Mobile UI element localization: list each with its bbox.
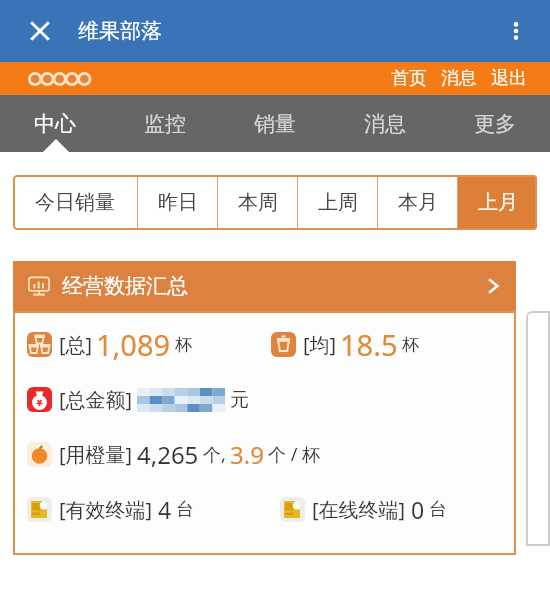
staticText: 杯 xyxy=(175,334,192,355)
staticText: [有效终端] xyxy=(59,496,153,523)
staticText: 台 xyxy=(429,498,447,521)
button[interactable]: More options xyxy=(494,9,538,53)
staticText: 上月 xyxy=(478,190,518,215)
button[interactable]: 更多 xyxy=(440,95,550,152)
button[interactable]: 今日销量 xyxy=(13,175,137,230)
staticText: 本周 xyxy=(238,190,278,215)
button[interactable]: 首页 xyxy=(384,67,434,90)
staticText: 个, xyxy=(203,442,226,467)
staticText: 今日销量 xyxy=(35,190,115,215)
button[interactable]: 昨日 xyxy=(138,175,217,230)
button[interactable]: 退出 xyxy=(484,67,534,90)
staticText: 杯 xyxy=(402,334,419,355)
staticText: 首页 xyxy=(391,67,427,90)
staticText: 个 / 杯 xyxy=(268,442,321,467)
staticText: 0 xyxy=(411,494,425,525)
staticText: 中心 xyxy=(34,111,76,137)
staticText: [均] xyxy=(303,331,337,358)
staticText: 4,265 xyxy=(137,438,199,471)
staticText: 3.9 xyxy=(230,438,264,471)
staticText: 18.5 xyxy=(340,325,398,364)
staticText: 元 xyxy=(230,388,249,412)
button[interactable]: 本月 xyxy=(378,175,457,230)
staticText: 消息 xyxy=(441,67,477,90)
staticText: 消息 xyxy=(364,111,406,137)
staticText: 更多 xyxy=(474,111,516,137)
staticText: 1,089 xyxy=(96,325,171,364)
staticText: 本月 xyxy=(398,190,438,215)
button[interactable]: 中心 xyxy=(0,95,110,152)
button[interactable]: 监控 xyxy=(110,95,220,152)
button[interactable]: 经营数据汇总 xyxy=(13,261,516,311)
button[interactable]: 上月 xyxy=(458,175,537,230)
button[interactable]: 本周 xyxy=(218,175,297,230)
staticText: 维果部落 xyxy=(78,18,162,44)
staticText: 经营数据汇总 xyxy=(62,273,188,299)
staticText: 上周 xyxy=(318,190,358,215)
staticText: 退出 xyxy=(491,67,527,90)
button[interactable]: Close xyxy=(18,9,62,53)
staticText: [用橙量] xyxy=(59,441,133,468)
staticText: [总金额] xyxy=(59,386,133,413)
button[interactable]: 上周 xyxy=(298,175,377,230)
staticText: 监控 xyxy=(144,111,186,137)
staticText: [在线终端] xyxy=(312,496,406,523)
staticText: [总] xyxy=(59,331,93,358)
staticText: 昨日 xyxy=(158,190,198,215)
button[interactable]: 消息 xyxy=(330,95,440,152)
button[interactable]: 销量 xyxy=(220,95,330,152)
staticText: 4 xyxy=(158,494,172,525)
staticText: 销量 xyxy=(254,111,296,137)
staticText: 台 xyxy=(176,498,194,521)
button[interactable]: 消息 xyxy=(434,67,484,90)
